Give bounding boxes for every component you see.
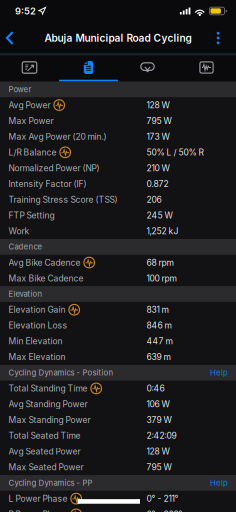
- staticText: Total Seated Time: [8, 430, 80, 441]
- staticText: 795 W: [146, 116, 171, 126]
- staticText: Cycling Dynamics - Position: [8, 368, 113, 377]
- staticText: Min Elevation: [8, 336, 62, 346]
- staticText: 68 rpm: [146, 257, 173, 268]
- staticText: 245 W: [146, 210, 172, 220]
- staticText: Intensity Factor (IF): [8, 179, 86, 189]
- staticText: Total Standing Time: [8, 383, 87, 394]
- staticText: Help: [210, 478, 228, 488]
- staticText: 447 m: [146, 336, 172, 346]
- staticText: 210 W: [146, 163, 169, 173]
- staticText: Avg Bike Cadence: [8, 257, 80, 268]
- staticText: 831 m: [146, 305, 168, 315]
- staticText: Elevation Loss: [8, 320, 67, 331]
- staticText: 639 m: [146, 352, 170, 362]
- staticText: Max Standing Power: [8, 415, 90, 425]
- staticText: 795 W: [146, 462, 171, 472]
- staticText: R Power Phase: [8, 509, 67, 512]
- staticText: L/R Balance: [8, 147, 56, 157]
- staticText: Help: [210, 368, 228, 377]
- staticText: Elevation Gain: [8, 305, 65, 315]
- staticText: 100 rpm: [146, 273, 176, 283]
- button[interactable]: Summary: [59, 55, 118, 80]
- staticText: 206: [146, 194, 161, 205]
- button[interactable]: Map: [0, 55, 59, 80]
- staticText: Training Stress Score (TSS): [8, 194, 117, 205]
- staticText: Max Seated Power: [8, 462, 83, 472]
- staticText: 9:52: [15, 5, 36, 17]
- staticText: Normalized Power (NP): [8, 163, 99, 173]
- staticText: Max Avg Power (20 min.): [8, 131, 106, 142]
- button[interactable]: Charts: [177, 55, 236, 80]
- staticText: FTP Setting: [8, 210, 54, 220]
- staticText: Max Elevation: [8, 352, 65, 362]
- button[interactable]: More options: [208, 24, 236, 52]
- staticText: 379 W: [146, 415, 171, 425]
- staticText: 0:46: [146, 383, 164, 394]
- staticText: Max Power: [8, 116, 53, 126]
- staticText: Cycling Dynamics - PP: [8, 478, 92, 488]
- staticText: Avg Power: [8, 100, 50, 110]
- staticText: Cadence: [8, 242, 42, 251]
- staticText: 106 W: [146, 399, 169, 409]
- staticText: 1,252 kJ: [146, 226, 178, 236]
- staticText: Max Bike Cadence: [8, 273, 83, 283]
- button[interactable]: Back: [0, 23, 23, 53]
- staticText: 128 W: [146, 100, 169, 110]
- staticText: 50% L / 50% R: [146, 147, 203, 157]
- staticText: 2:42:09: [146, 430, 176, 441]
- staticText: 0° - 211°: [146, 493, 178, 504]
- staticText: L Power Phase: [8, 493, 67, 504]
- staticText: 173 W: [146, 131, 169, 142]
- staticText: 0° - 208°: [146, 509, 182, 512]
- button[interactable]: Laps: [118, 55, 177, 80]
- staticText: 846 m: [146, 320, 171, 331]
- staticText: Elevation: [8, 289, 42, 299]
- staticText: Work: [8, 226, 29, 236]
- staticText: Abuja Municipal Road Cycling: [44, 32, 191, 44]
- staticText: Avg Seated Power: [8, 446, 80, 457]
- staticText: Avg Standing Power: [8, 399, 87, 409]
- staticText: 128 W: [146, 446, 169, 457]
- button[interactable]: Help: [210, 368, 228, 377]
- button[interactable]: Help: [210, 478, 228, 488]
- staticText: Power: [8, 85, 31, 94]
- staticText: 0.872: [146, 179, 168, 189]
